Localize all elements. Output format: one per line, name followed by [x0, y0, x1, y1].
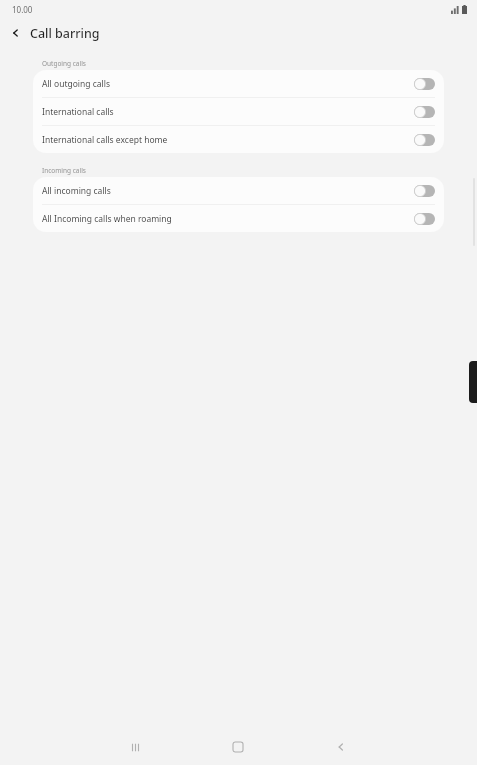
staticText: Call barring — [30, 25, 100, 42]
button[interactable]: Toggle — [414, 78, 435, 90]
other: Edge panel handle — [469, 361, 477, 403]
button[interactable]: International calls — [33, 98, 444, 125]
staticText: International calls except home — [42, 134, 414, 146]
button[interactable]: Toggle — [414, 106, 435, 118]
button[interactable]: Recent apps — [118, 730, 152, 764]
staticText: All Incoming calls when roaming — [42, 213, 414, 225]
staticText: International calls — [42, 106, 414, 118]
staticText: Incoming calls — [42, 166, 86, 175]
staticText: 10.00 — [12, 4, 33, 15]
button[interactable]: Home — [221, 730, 255, 764]
button[interactable]: All Incoming calls when roaming — [33, 205, 444, 232]
staticText: All incoming calls — [42, 185, 414, 197]
button[interactable]: Toggle — [414, 185, 435, 197]
button[interactable]: All incoming calls — [33, 177, 444, 204]
button[interactable]: Back — [324, 730, 358, 764]
button[interactable]: Toggle — [414, 134, 435, 146]
button[interactable]: All outgoing calls — [33, 70, 444, 97]
button[interactable]: Toggle — [414, 213, 435, 225]
staticText: All outgoing calls — [42, 78, 414, 90]
button[interactable]: International calls except home — [33, 126, 444, 153]
staticText: Outgoing calls — [42, 59, 86, 68]
button[interactable]: Back — [4, 21, 28, 45]
